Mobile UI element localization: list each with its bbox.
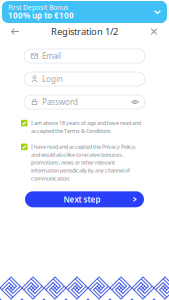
button[interactable]: Back bbox=[5, 23, 25, 39]
button[interactable]: Email bbox=[24, 49, 145, 63]
button[interactable]: Toggle consent bbox=[21, 119, 27, 126]
staticText: and would also like to receive bonuses, bbox=[31, 151, 123, 158]
button[interactable]: Toggle consent bbox=[21, 143, 27, 150]
staticText: Password bbox=[42, 97, 78, 107]
button[interactable]: First Deposit Bonus bbox=[2, 1, 167, 23]
staticText: promotions, news or other relevant bbox=[31, 159, 115, 166]
staticText: communication. bbox=[31, 175, 70, 182]
button[interactable]: Login bbox=[24, 72, 145, 86]
button[interactable]: Close bbox=[144, 23, 164, 39]
staticText: accepted the Terms & Conditions bbox=[31, 127, 111, 134]
button[interactable]: Password bbox=[24, 95, 145, 109]
staticText: I have read and accepted the Privacy Pol… bbox=[31, 143, 136, 150]
staticText: First Deposit Bonus bbox=[8, 3, 68, 12]
button[interactable]: Next step bbox=[25, 191, 144, 207]
staticText: Registration 1/2 bbox=[51, 25, 118, 38]
staticText: Login bbox=[42, 74, 63, 84]
staticText: Email bbox=[42, 51, 61, 61]
staticText: I am above 18 years of age and have read… bbox=[31, 119, 141, 126]
staticText: 100% up to €100 bbox=[8, 10, 74, 21]
staticText: information periodically by any channel … bbox=[31, 167, 130, 174]
staticText: Next step bbox=[63, 194, 100, 205]
